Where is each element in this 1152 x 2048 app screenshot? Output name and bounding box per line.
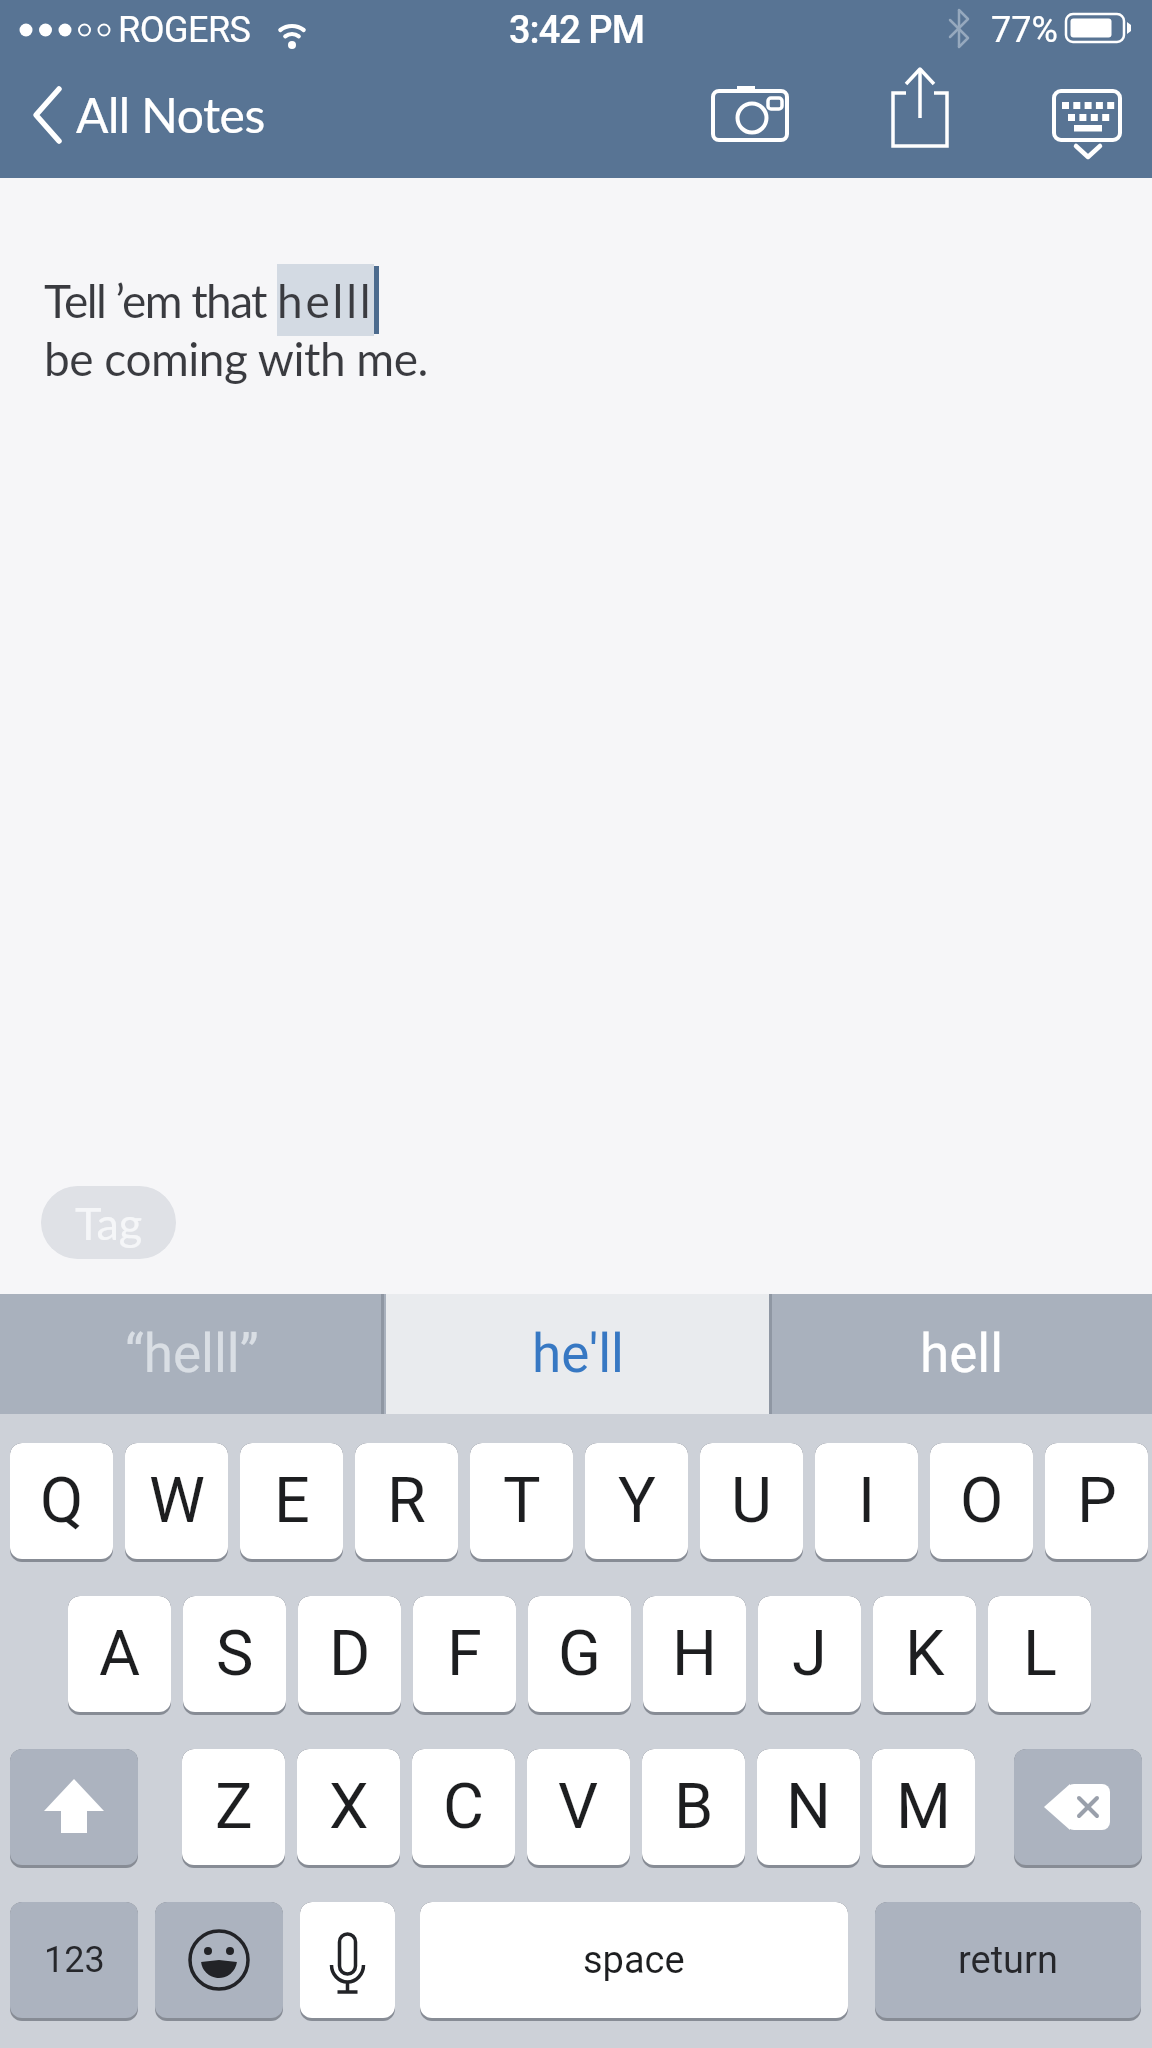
staticText: helll	[277, 273, 374, 328]
staticText: F	[447, 1617, 482, 1691]
staticText: Y	[618, 1464, 656, 1538]
staticText: J	[792, 1617, 827, 1691]
staticText: Tell ’em that	[44, 273, 277, 328]
staticText: H	[672, 1617, 717, 1691]
staticText: G	[558, 1617, 601, 1691]
staticText: O	[960, 1464, 1004, 1538]
staticText: 123	[44, 1939, 105, 1981]
staticText: return	[958, 1938, 1058, 1983]
staticText: K	[905, 1617, 945, 1691]
staticText: N	[786, 1770, 831, 1844]
button[interactable]: U	[700, 1443, 803, 1562]
button[interactable]	[155, 1902, 283, 2021]
staticText: C	[443, 1770, 485, 1844]
staticText: A	[99, 1617, 141, 1691]
button[interactable]	[1040, 76, 1136, 166]
staticText: 77%	[991, 9, 1058, 51]
staticText: space	[583, 1938, 685, 1983]
button[interactable]: All Notes	[20, 80, 320, 150]
button[interactable]: H	[643, 1596, 746, 1715]
button[interactable]: he'll	[386, 1294, 770, 1414]
button[interactable]: K	[873, 1596, 976, 1715]
button[interactable]: X	[297, 1749, 400, 1868]
button[interactable]: Q	[10, 1443, 113, 1562]
button[interactable]: space	[420, 1902, 848, 2021]
button[interactable]: 123	[10, 1902, 138, 2021]
staticText: R	[387, 1464, 426, 1538]
staticText: E	[274, 1464, 310, 1538]
button[interactable]: B	[642, 1749, 745, 1868]
button[interactable]: hell	[772, 1294, 1152, 1414]
staticText: “helll”	[125, 1323, 259, 1385]
staticText: All Notes	[76, 86, 265, 144]
staticText: X	[329, 1770, 369, 1844]
staticText: Q	[40, 1464, 84, 1538]
staticText: U	[731, 1464, 772, 1538]
button[interactable]	[695, 80, 799, 152]
staticText: B	[674, 1770, 714, 1844]
button[interactable]: Z	[182, 1749, 285, 1868]
button[interactable]: W	[125, 1443, 228, 1562]
button[interactable]: Y	[585, 1443, 688, 1562]
button[interactable]: “helll”	[0, 1294, 384, 1414]
staticText: hell	[920, 1323, 1004, 1385]
staticText: Z	[215, 1770, 253, 1844]
button[interactable]: R	[355, 1443, 458, 1562]
staticText: S	[216, 1617, 254, 1691]
button[interactable]: E	[240, 1443, 343, 1562]
staticText: Tag	[75, 1196, 143, 1250]
button[interactable]: D	[298, 1596, 401, 1715]
button[interactable]: C	[412, 1749, 515, 1868]
button[interactable]	[10, 1749, 138, 1868]
staticText: V	[558, 1770, 599, 1844]
staticText: ROGERS	[118, 9, 251, 51]
button[interactable]: L	[988, 1596, 1091, 1715]
staticText: M	[896, 1770, 952, 1844]
button[interactable]: F	[413, 1596, 516, 1715]
button[interactable]: N	[757, 1749, 860, 1868]
button[interactable]: M	[872, 1749, 975, 1868]
staticText: D	[329, 1617, 371, 1691]
staticText: W	[149, 1464, 205, 1538]
button[interactable]: V	[527, 1749, 630, 1868]
button[interactable]	[1014, 1749, 1142, 1868]
button[interactable]: return	[875, 1902, 1141, 2021]
button[interactable]	[300, 1902, 395, 2021]
button[interactable]: Tag	[41, 1186, 176, 1259]
staticText: P	[1077, 1464, 1117, 1538]
staticText: T	[503, 1464, 541, 1538]
staticText: be coming with me.	[44, 331, 428, 386]
staticText: 3:42 PM	[509, 8, 644, 52]
button[interactable]: T	[470, 1443, 573, 1562]
button[interactable]: I	[815, 1443, 918, 1562]
button[interactable]: G	[528, 1596, 631, 1715]
button[interactable]: O	[930, 1443, 1033, 1562]
staticText: I	[858, 1464, 876, 1538]
button[interactable]: S	[183, 1596, 286, 1715]
staticText: L	[1023, 1617, 1057, 1691]
button[interactable]: J	[758, 1596, 861, 1715]
button[interactable]: P	[1045, 1443, 1148, 1562]
staticText: he'll	[532, 1323, 624, 1385]
button[interactable]: A	[68, 1596, 171, 1715]
button[interactable]	[880, 60, 960, 155]
